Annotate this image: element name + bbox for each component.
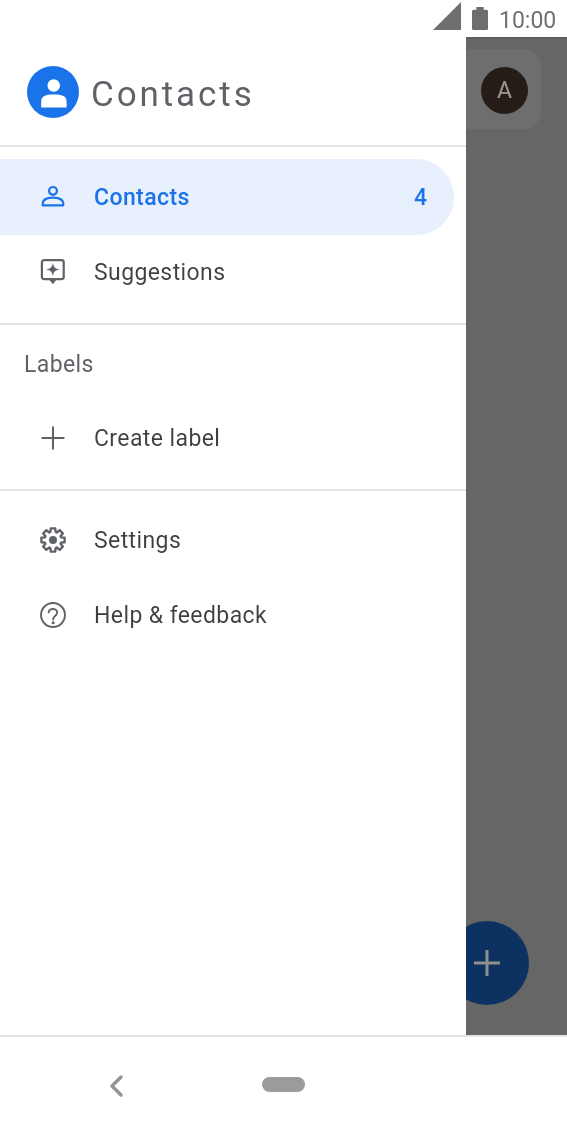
staticText: 4: [414, 184, 428, 211]
staticText: A: [497, 77, 513, 104]
button[interactable]: Search contacts: [440, 49, 541, 129]
staticText: Suggestions: [94, 259, 226, 286]
staticText: Help & feedback: [94, 602, 268, 629]
button[interactable]: Suggestions: [0, 234, 454, 310]
staticText: Contacts: [94, 184, 190, 211]
staticText: Settings: [94, 527, 182, 554]
button[interactable]: Home: [262, 1077, 305, 1092]
button[interactable]: Create contact: [445, 921, 529, 1005]
staticText: Labels: [24, 351, 94, 378]
staticText: Create label: [94, 425, 221, 452]
button[interactable]: Back: [100, 1065, 134, 1103]
button[interactable]: Create label: [0, 400, 454, 476]
button[interactable]: Contacts: [0, 159, 454, 235]
staticText: 10:00: [499, 7, 557, 34]
staticText: Contacts: [91, 74, 255, 115]
button[interactable]: Settings: [0, 502, 454, 578]
button[interactable]: Help & feedback: [0, 577, 454, 653]
button[interactable]: Account: [481, 67, 528, 114]
button[interactable]: Contacts: [0, 39, 466, 145]
